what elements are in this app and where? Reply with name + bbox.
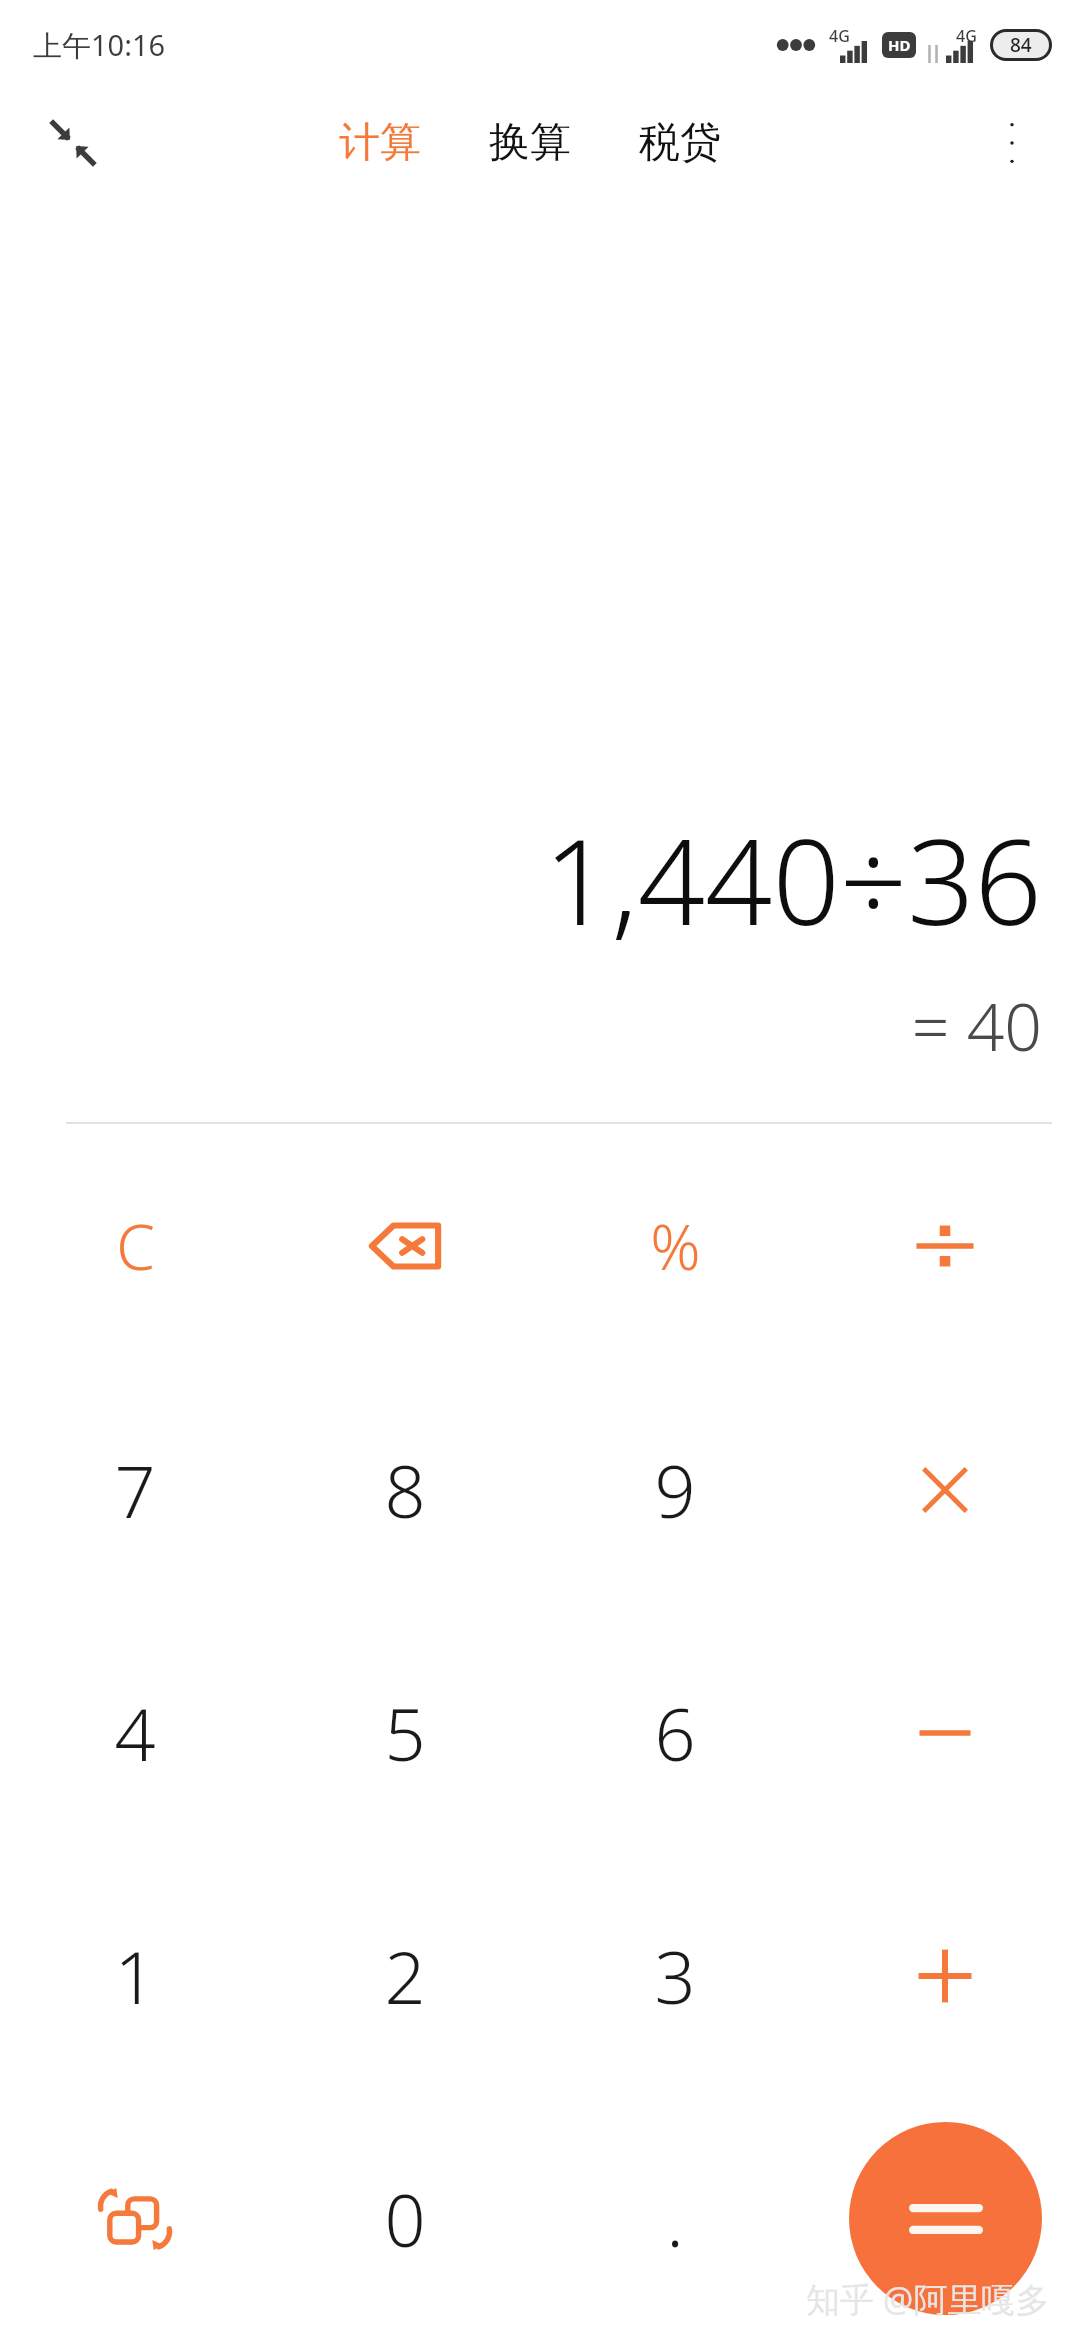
button[interactable]: 7	[0, 1368, 270, 1611]
staticText: 税贷	[639, 117, 721, 169]
button[interactable]: More options	[972, 103, 1052, 183]
staticText: 4	[114, 1684, 156, 1782]
staticText: 9	[654, 1441, 696, 1539]
staticText: 上午10:16	[33, 25, 166, 65]
button[interactable]: Subtract	[810, 1611, 1080, 1854]
staticText: 84	[1010, 32, 1032, 58]
button[interactable]: 计算	[317, 103, 443, 183]
button[interactable]: 8	[270, 1368, 540, 1611]
staticText: 换算	[489, 117, 571, 169]
staticText: 1	[114, 1927, 156, 2025]
button[interactable]: 税贷	[617, 103, 743, 183]
staticText: C	[116, 1204, 155, 1288]
staticText: %	[650, 1204, 701, 1288]
staticText: 4G	[956, 25, 977, 47]
button[interactable]: %	[540, 1124, 810, 1368]
staticText: 3	[654, 1927, 696, 2025]
button[interactable]: Unit conversion	[0, 2097, 270, 2340]
staticText: 0	[384, 2170, 426, 2268]
staticText: 8	[384, 1441, 426, 1539]
button[interactable]: 1	[0, 1854, 270, 2097]
staticText: 5	[384, 1684, 426, 1782]
button[interactable]: .	[540, 2097, 810, 2340]
button[interactable]: 3	[540, 1854, 810, 2097]
button[interactable]: Add	[810, 1854, 1080, 2097]
staticText: 知乎 @阿里嘎多	[806, 2276, 1050, 2322]
button[interactable]: Backspace	[270, 1124, 540, 1368]
staticText: 1,440÷36	[543, 799, 1042, 960]
button[interactable]: Collapse	[30, 100, 116, 186]
button[interactable]: C	[0, 1124, 270, 1368]
button[interactable]: 6	[540, 1611, 810, 1854]
button[interactable]: 9	[540, 1368, 810, 1611]
staticText: 2	[384, 1927, 426, 2025]
button[interactable]: 换算	[467, 103, 593, 183]
staticText: .	[666, 2170, 684, 2268]
staticText: 4G	[829, 25, 850, 47]
button[interactable]: Divide	[810, 1124, 1080, 1368]
button[interactable]: Multiply	[810, 1368, 1080, 1611]
button[interactable]: 5	[270, 1611, 540, 1854]
button[interactable]: 2	[270, 1854, 540, 2097]
staticText: HD	[888, 35, 911, 55]
button[interactable]: 4	[0, 1611, 270, 1854]
button[interactable]: Equals	[849, 2122, 1042, 2315]
staticText: = 40	[911, 980, 1042, 1070]
staticText: 计算	[339, 117, 421, 169]
staticText: 6	[654, 1684, 696, 1782]
button[interactable]: 0	[270, 2097, 540, 2340]
staticText: 7	[114, 1441, 156, 1539]
